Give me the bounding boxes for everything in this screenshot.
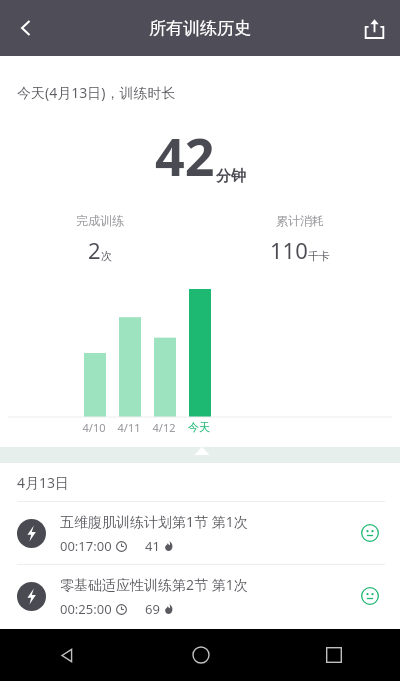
staticText: 五维腹肌训练计划第1节 第1次	[60, 512, 248, 531]
button[interactable]: 零基础适应性训练第2节 第1次	[0, 565, 400, 627]
staticText: 4/12	[148, 420, 180, 435]
staticText: 00:25:00	[60, 600, 112, 618]
staticText: 4/11	[113, 420, 145, 435]
staticText: 69	[145, 600, 160, 618]
button[interactable]: Share	[348, 2, 400, 54]
staticText: 分钟	[216, 167, 246, 186]
staticText: 零基础适应性训练第2节 第1次	[60, 575, 248, 594]
staticText: 今天	[183, 420, 215, 434]
button[interactable]: Home	[134, 629, 267, 681]
button[interactable]: Back	[0, 2, 52, 54]
staticText: 110	[270, 235, 308, 265]
staticText: 41	[145, 537, 160, 555]
button[interactable]: Recent apps	[267, 629, 400, 681]
staticText: 00:17:00	[60, 537, 112, 555]
staticText: 42	[155, 120, 215, 191]
staticText: 4/10	[78, 420, 110, 435]
button[interactable]: Feeling: neutral	[355, 581, 385, 611]
button[interactable]: Back	[0, 629, 134, 681]
staticText: 累计消耗	[276, 213, 324, 228]
staticText: 完成训练	[76, 213, 124, 228]
staticText: 4月13日	[17, 473, 70, 492]
staticText: 千卡	[308, 249, 330, 263]
staticText: 次	[101, 249, 112, 263]
staticText: 所有训练历史	[149, 18, 251, 39]
staticText: 2	[88, 235, 101, 265]
staticText: 今天(4月13日)，训练时长	[17, 83, 176, 102]
button[interactable]: 五维腹肌训练计划第1节 第1次	[0, 502, 400, 564]
button[interactable]: Feeling: neutral	[355, 518, 385, 548]
